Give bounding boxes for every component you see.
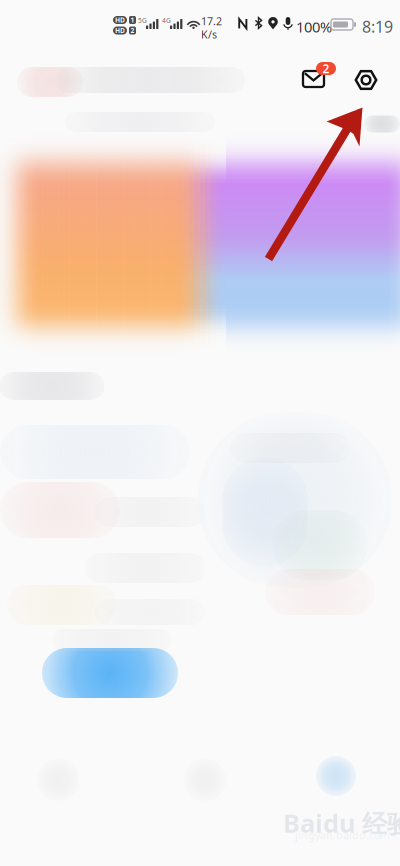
staticText: HD: [115, 16, 125, 24]
staticText: 100%: [296, 17, 332, 36]
staticText: 5G: [138, 16, 147, 25]
staticText: jingyan.baidu.com: [295, 828, 390, 842]
staticText: 8:19: [362, 16, 393, 37]
staticText: 4G: [162, 16, 171, 25]
button[interactable]: Messages: [303, 62, 348, 99]
staticText: 2: [130, 26, 134, 35]
staticText: 17.2: [201, 14, 222, 28]
staticText: HD: [115, 26, 125, 35]
staticText: 2: [322, 60, 329, 76]
staticText: K/s: [201, 27, 217, 41]
button[interactable]: Settings: [348, 62, 384, 98]
staticText: 1: [130, 16, 134, 24]
staticText: Baidu 经验: [283, 806, 400, 840]
